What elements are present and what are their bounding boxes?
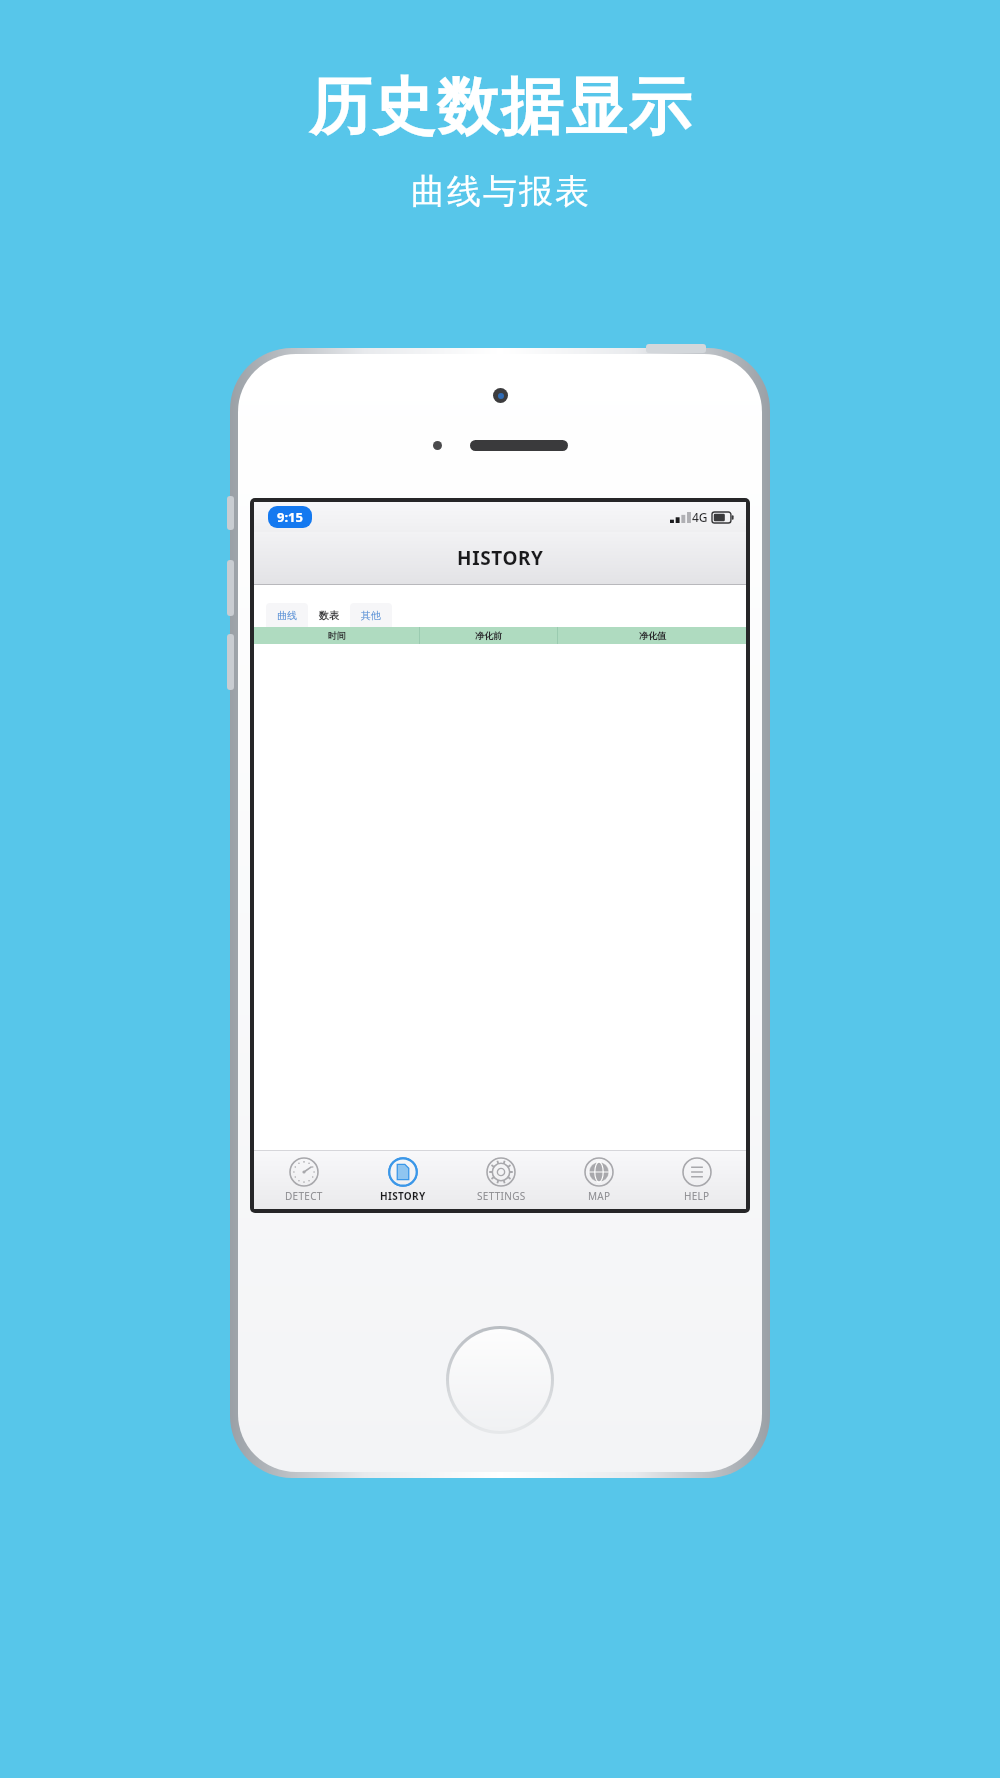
button[interactable]: SETTINGS [452,1151,550,1209]
staticText: HISTORY [380,1189,426,1203]
staticText: 时间 [328,630,346,641]
staticText: 4G [692,509,708,525]
staticText: HELP [684,1189,710,1203]
button[interactable]: DETECT [254,1151,353,1209]
staticText: 其他 [361,609,381,622]
button[interactable]: 曲线 [266,603,308,627]
button[interactable]: HISTORY [353,1151,452,1209]
staticText: 曲线与报表 [410,170,590,213]
staticText: DETECT [285,1189,323,1203]
staticText: 9:15 [277,508,303,526]
staticText: 净化值 [639,630,666,641]
button[interactable]: 数表 [308,603,350,627]
staticText: SETTINGS [477,1189,526,1203]
staticText: 数表 [319,609,339,622]
button[interactable]: HELP [648,1151,746,1209]
staticText: HISTORY [457,545,544,571]
staticText: 历史数据显示 [308,68,692,146]
button[interactable]: MAP [550,1151,648,1209]
button[interactable]: 其他 [350,603,392,627]
staticText: 曲线 [277,609,297,622]
staticText: 净化前 [475,630,502,641]
staticText: MAP [588,1189,611,1203]
